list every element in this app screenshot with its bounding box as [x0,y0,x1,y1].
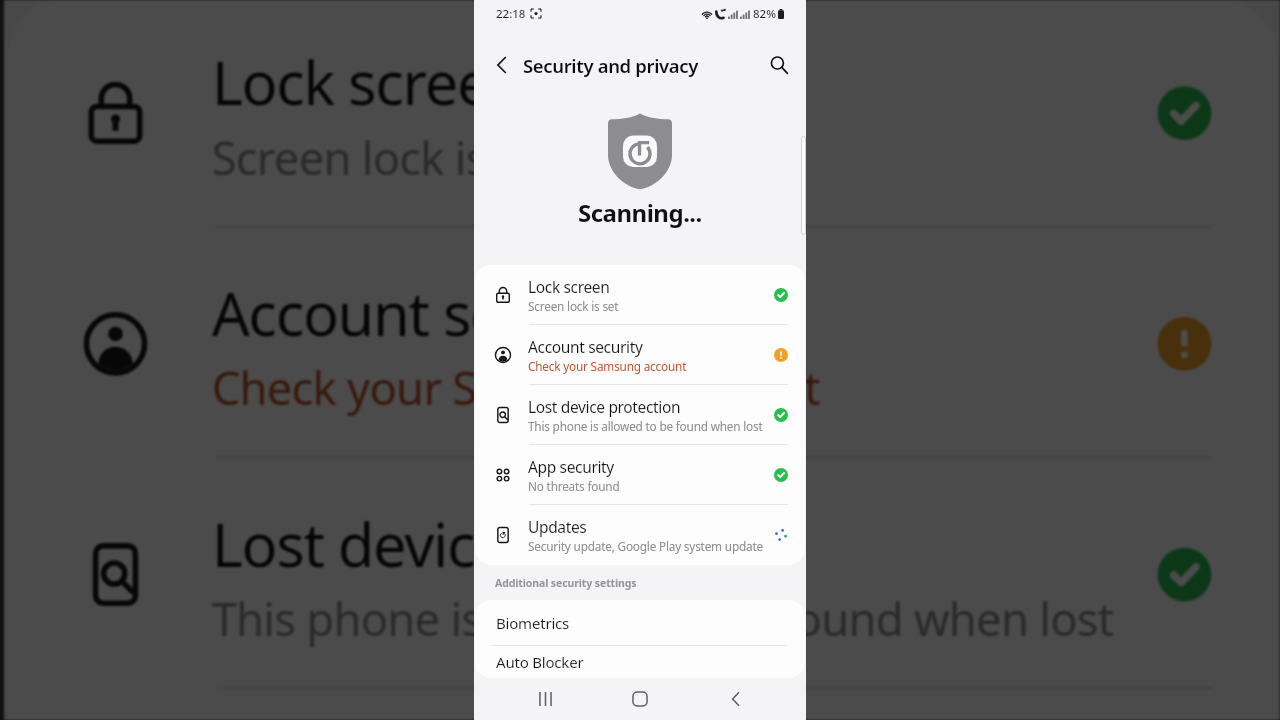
staticText: Biometrics [496,613,570,633]
button[interactable]: Auto Blocker [475,646,805,678]
staticText: App security [528,456,614,477]
button[interactable]: Lost device protection [475,385,805,445]
staticText: 82% [753,6,776,22]
button[interactable]: Search [762,48,796,82]
staticText: Auto Blocker [496,652,584,672]
staticText: Updates [528,516,587,537]
staticText: No threats found [528,478,620,494]
staticText: Lock screen [212,40,527,121]
staticText: Lock screen [528,276,610,297]
button[interactable]: Account security [475,325,805,385]
button[interactable]: Navigate up [485,48,519,82]
button[interactable]: Updates [475,505,805,565]
button[interactable]: Lock screen [8,0,1277,228]
button[interactable]: Biometrics [475,600,805,646]
button[interactable]: App security [8,690,1277,720]
staticText: Security and privacy [523,53,699,78]
staticText: Check your Samsung account [528,358,687,374]
staticText: Lost device protection [212,501,800,582]
button[interactable]: Lock screen [475,265,805,325]
button[interactable]: Account security [8,228,1277,459]
staticText: 22:18 [496,6,526,22]
staticText: This phone is allowed to be found when l… [528,418,763,434]
staticText: Additional security settings [495,576,637,590]
staticText: Check your Samsung account [212,355,823,417]
button[interactable]: Back [711,678,761,720]
button[interactable]: Home [615,678,665,720]
button[interactable]: Recent apps [520,678,570,720]
staticText: Screen lock is set [528,298,619,314]
button[interactable]: App security [475,445,805,505]
staticText: Scanning... [578,196,702,229]
button[interactable]: Lost device protection [8,459,1277,690]
staticText: Lost device protection [528,396,681,417]
staticText: Account security [212,271,654,351]
staticText: Security update, Google Play system upda… [528,538,763,554]
staticText: Screen lock is set [212,125,561,186]
staticText: Account security [528,336,643,357]
staticText: This phone is allowed to be found when l… [212,586,1115,648]
